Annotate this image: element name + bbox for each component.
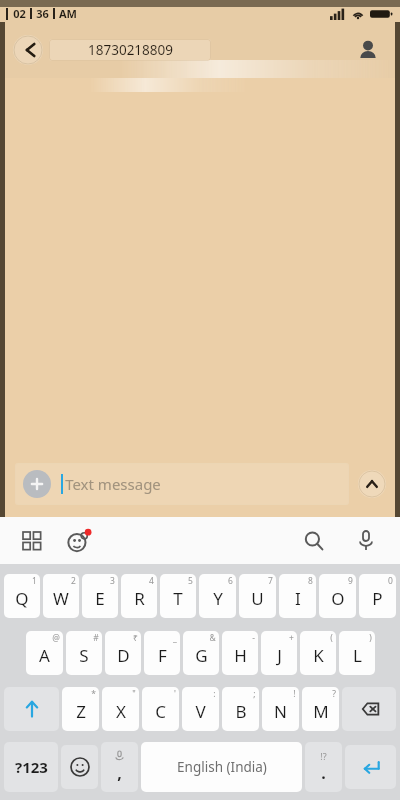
button[interactable]: 18730218809 [49, 39, 211, 61]
staticText: G [195, 644, 208, 667]
staticText: 02 [13, 6, 26, 21]
button[interactable]: _ [144, 631, 180, 675]
staticText: O [331, 587, 345, 610]
button[interactable]: & [183, 631, 219, 675]
button[interactable]: Backspace [342, 687, 396, 731]
staticText: . [321, 762, 326, 784]
button[interactable]: # [66, 631, 102, 675]
staticText: 7 [268, 575, 273, 587]
button[interactable]: ? [302, 687, 339, 731]
button[interactable]: ) [339, 631, 375, 675]
staticText: Y [213, 587, 223, 610]
button[interactable]: Stickers [62, 524, 96, 558]
button[interactable]: 3 [82, 574, 118, 618]
button[interactable]: ' [142, 687, 179, 731]
button[interactable]: 7 [239, 574, 276, 618]
staticText: # [93, 632, 99, 644]
button[interactable]: Search [296, 523, 332, 559]
staticText: L [353, 644, 362, 667]
button[interactable]: + [261, 631, 297, 675]
button[interactable]: Add attachment [15, 463, 349, 505]
button[interactable]: - [222, 631, 258, 675]
button[interactable]: English (India) [141, 742, 302, 792]
staticText: * [91, 688, 96, 700]
button[interactable]: @ [26, 631, 63, 675]
button[interactable]: 1 [4, 574, 40, 618]
staticText: U [251, 587, 264, 610]
staticText: ! [293, 688, 296, 700]
staticText: ' [174, 688, 176, 700]
button[interactable]: ?123 [4, 742, 58, 792]
staticText: H [234, 644, 247, 667]
staticText: C [155, 700, 166, 723]
staticText: Z [76, 700, 86, 723]
staticText: Text message [65, 474, 161, 494]
button[interactable]: Contact details [351, 33, 385, 67]
staticText: " [132, 688, 136, 700]
staticText: Q [15, 587, 29, 610]
button[interactable]: 9 [319, 574, 356, 618]
staticText: 2 [71, 575, 76, 587]
button[interactable]: : [182, 687, 219, 731]
staticText: ( [330, 632, 333, 644]
staticText: K [313, 644, 324, 667]
staticText: 6 [228, 575, 233, 587]
staticText: V [195, 700, 206, 723]
staticText: A [39, 644, 50, 667]
staticText: 36 [36, 6, 49, 21]
button[interactable]: 8 [279, 574, 316, 618]
staticText: F [158, 644, 167, 667]
button[interactable]: Shift [4, 687, 59, 731]
button[interactable]: ( [300, 631, 336, 675]
button[interactable]: Voice input [348, 523, 384, 559]
button[interactable]: Emoji [61, 745, 98, 789]
staticText: _ [173, 632, 177, 644]
button[interactable]: 0 [359, 574, 396, 618]
staticText: ; [253, 688, 256, 700]
staticText: D [117, 644, 130, 667]
button[interactable]: Send [357, 469, 387, 499]
staticText: N [274, 700, 287, 723]
button[interactable]: !? [305, 742, 342, 792]
staticText: & [209, 632, 216, 644]
staticText: : [213, 688, 216, 700]
staticText: X [116, 700, 126, 723]
button[interactable]: Keyboard layouts [16, 525, 48, 557]
staticText: - [252, 632, 255, 644]
staticText: W [53, 587, 69, 610]
staticText: S [79, 644, 89, 667]
staticText: I [295, 587, 301, 610]
staticText: J [277, 644, 282, 667]
staticText: @ [52, 632, 60, 644]
button[interactable]: Add attachment [23, 470, 51, 498]
button[interactable]: 6 [199, 574, 236, 618]
button[interactable]: Enter [345, 745, 396, 789]
button[interactable]: ! [262, 687, 299, 731]
staticText: 18730218809 [88, 41, 173, 59]
staticText: ) [369, 632, 372, 644]
staticText: E [95, 587, 105, 610]
staticText: 4 [149, 575, 154, 587]
staticText: ? [332, 688, 336, 700]
staticText: B [235, 700, 247, 723]
button[interactable]: 4 [121, 574, 157, 618]
button[interactable]: 2 [43, 574, 79, 618]
staticText: T [173, 587, 183, 610]
staticText: 9 [348, 575, 353, 587]
staticText: R [134, 587, 145, 610]
staticText: 8 [308, 575, 313, 587]
staticText: 1 [32, 575, 37, 587]
button[interactable]: ₹ [105, 631, 141, 675]
staticText: ?123 [15, 757, 48, 777]
staticText: AM [59, 6, 77, 21]
staticText: M [313, 700, 329, 723]
button[interactable]: ; [222, 687, 259, 731]
button[interactable]: * [62, 687, 99, 731]
staticText: + [289, 632, 294, 644]
staticText: ₹ [133, 632, 138, 644]
button[interactable]: " [102, 687, 139, 731]
button[interactable]: Back [11, 33, 45, 67]
button[interactable]: 5 [160, 574, 196, 618]
button[interactable]: , [101, 742, 138, 792]
staticText: P [372, 587, 383, 610]
